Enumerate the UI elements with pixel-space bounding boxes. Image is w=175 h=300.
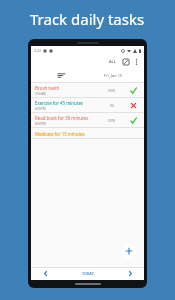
staticText: 7:00 AM [35, 92, 46, 96]
button[interactable]: Toggle completed [122, 58, 129, 65]
staticText: Exercise for 45 minutes [35, 100, 83, 106]
staticText: 100% [108, 89, 116, 93]
button[interactable]: Meditate for 15 minutes [31, 128, 144, 139]
button[interactable]: Fri, Jan 15 [87, 68, 140, 83]
button[interactable]: Add task [121, 243, 136, 258]
button[interactable]: More options [133, 58, 140, 65]
staticText: 0% [110, 104, 114, 108]
staticText: ALL [109, 59, 116, 64]
button[interactable]: Brush teeth [31, 83, 144, 98]
staticText: Brush teeth [35, 85, 60, 91]
staticText: Fri, Jan 15 [104, 73, 123, 78]
staticText: 8:00 PM [35, 122, 46, 126]
staticText: TODAY [82, 271, 94, 276]
staticText: 3:22 [34, 48, 41, 53]
staticText: 6:00 PM [35, 107, 46, 111]
button[interactable]: Sort [35, 68, 87, 83]
button[interactable]: ALL [107, 58, 118, 65]
button[interactable]: Next day [116, 267, 144, 280]
staticText: Track daily tasks [30, 9, 145, 29]
button[interactable]: Read book for 30 minutes [31, 113, 144, 128]
button[interactable]: TODAY [59, 267, 116, 280]
button[interactable]: Previous day [31, 267, 59, 280]
staticText: Meditate for 15 minutes [35, 131, 85, 137]
staticText: 100% [108, 119, 116, 123]
staticText: Read book for 30 minutes [35, 115, 89, 121]
button[interactable]: Exercise for 45 minutes [31, 98, 144, 113]
